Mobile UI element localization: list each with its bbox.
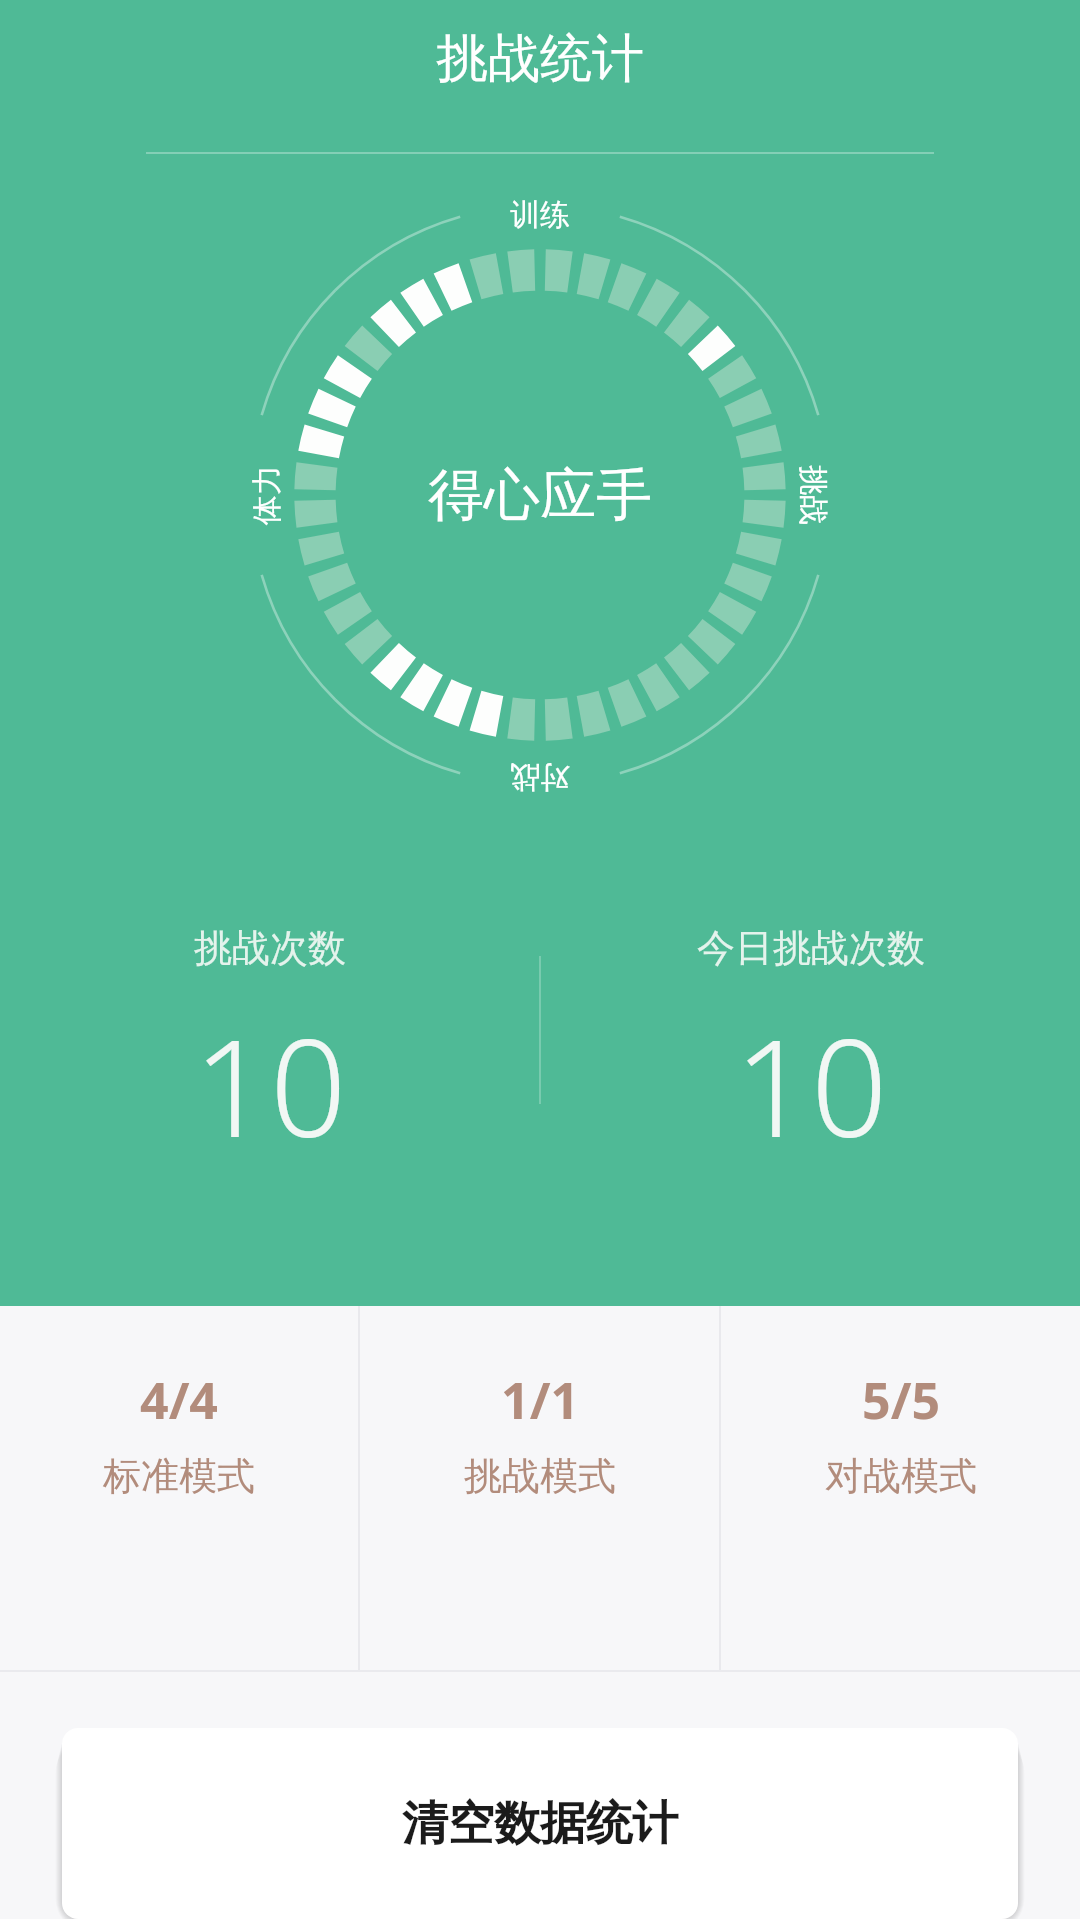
staticText: 10: [734, 994, 888, 1177]
staticText: 挑战统计: [436, 26, 644, 92]
button[interactable]: 5/5: [721, 1306, 1080, 1672]
staticText: 5/5: [862, 1366, 940, 1434]
button[interactable]: 4/4: [0, 1306, 358, 1672]
staticText: 1/1: [501, 1366, 579, 1434]
button[interactable]: 清空数据统计: [62, 1728, 1018, 1919]
staticText: 对战: [510, 758, 570, 796]
staticText: 10: [193, 994, 347, 1177]
staticText: 挑战模式: [464, 1452, 616, 1500]
staticText: 训练: [510, 196, 570, 234]
staticText: 对战模式: [825, 1452, 977, 1500]
staticText: 挑战: [794, 465, 832, 525]
staticText: 4/4: [140, 1366, 218, 1434]
button[interactable]: 1/1: [360, 1306, 719, 1672]
staticText: 标准模式: [103, 1452, 255, 1500]
staticText: 体力: [248, 465, 286, 525]
staticText: 得心应手: [428, 460, 652, 531]
staticText: 清空数据统计: [402, 1795, 678, 1853]
staticText: 今日挑战次数: [697, 924, 925, 972]
staticText: 挑战次数: [194, 924, 346, 972]
